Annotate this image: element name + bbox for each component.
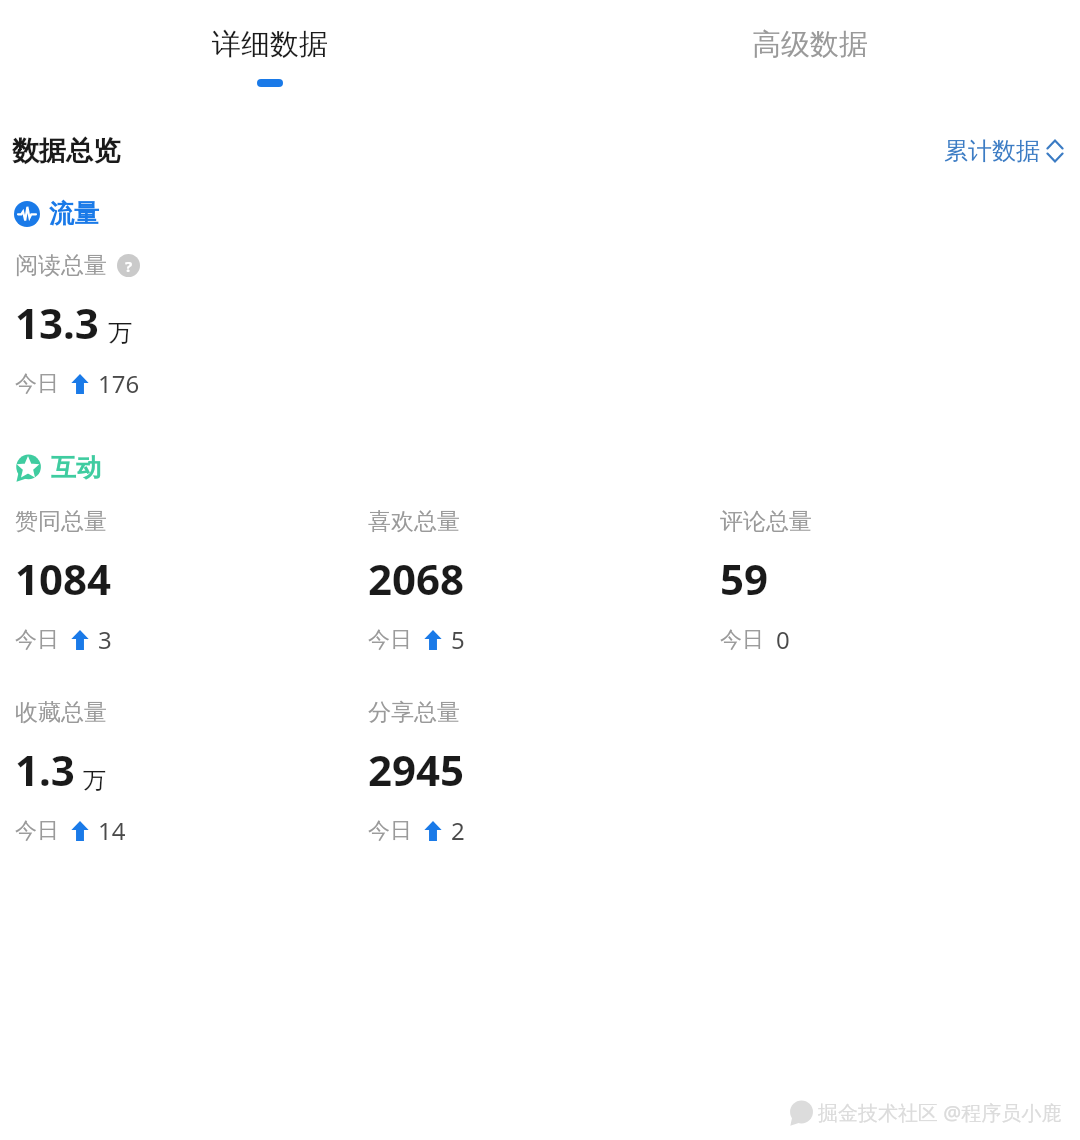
staticText: 1.3 <box>15 741 75 798</box>
staticText: 喜欢总量 <box>368 507 460 536</box>
staticText: 赞同总量 <box>15 507 107 536</box>
staticText: 5 <box>451 623 465 656</box>
staticText: 14 <box>98 814 126 847</box>
staticText: 掘金技术社区 @程序员小鹿 <box>818 1099 1062 1126</box>
staticText: 今日 <box>720 626 764 654</box>
button[interactable]: 评论总量 <box>720 507 816 656</box>
staticText: 万 <box>108 318 132 348</box>
staticText: 0 <box>776 623 790 656</box>
staticText: 流量 <box>49 198 99 229</box>
button[interactable]: 分享总量 <box>368 698 469 847</box>
staticText: 3 <box>98 623 112 656</box>
staticText: 今日 <box>368 817 412 845</box>
staticText: 累计数据 <box>944 136 1040 166</box>
button[interactable]: 赞同总量 <box>15 507 116 656</box>
staticText: 阅读总量 <box>15 251 107 280</box>
staticText: 数据总览 <box>12 134 120 168</box>
staticText: ? <box>125 256 133 276</box>
button[interactable]: 喜欢总量 <box>368 507 469 656</box>
staticText: 评论总量 <box>720 507 812 536</box>
staticText: 2945 <box>368 741 465 798</box>
staticText: 分享总量 <box>368 698 460 727</box>
staticText: 万 <box>83 766 106 795</box>
staticText: 1084 <box>15 550 112 607</box>
staticText: 今日 <box>15 817 59 845</box>
staticText: 2 <box>451 814 465 847</box>
staticText: 13.3 <box>15 294 99 351</box>
button[interactable]: 累计数据 <box>940 132 1068 170</box>
button[interactable]: 收藏总量 <box>15 698 130 847</box>
staticText: 2068 <box>368 550 465 607</box>
staticText: 收藏总量 <box>15 698 107 727</box>
staticText: 176 <box>98 367 140 400</box>
staticText: 互动 <box>51 452 101 483</box>
staticText: 详细数据 <box>212 26 328 63</box>
button[interactable]: 说明 <box>117 254 140 277</box>
staticText: 高级数据 <box>752 26 868 63</box>
staticText: 今日 <box>15 370 59 398</box>
staticText: 59 <box>720 550 769 607</box>
staticText: 今日 <box>368 626 412 654</box>
button[interactable]: 高级数据 <box>540 0 1080 110</box>
staticText: 今日 <box>15 626 59 654</box>
button[interactable]: 详细数据 <box>0 0 540 110</box>
